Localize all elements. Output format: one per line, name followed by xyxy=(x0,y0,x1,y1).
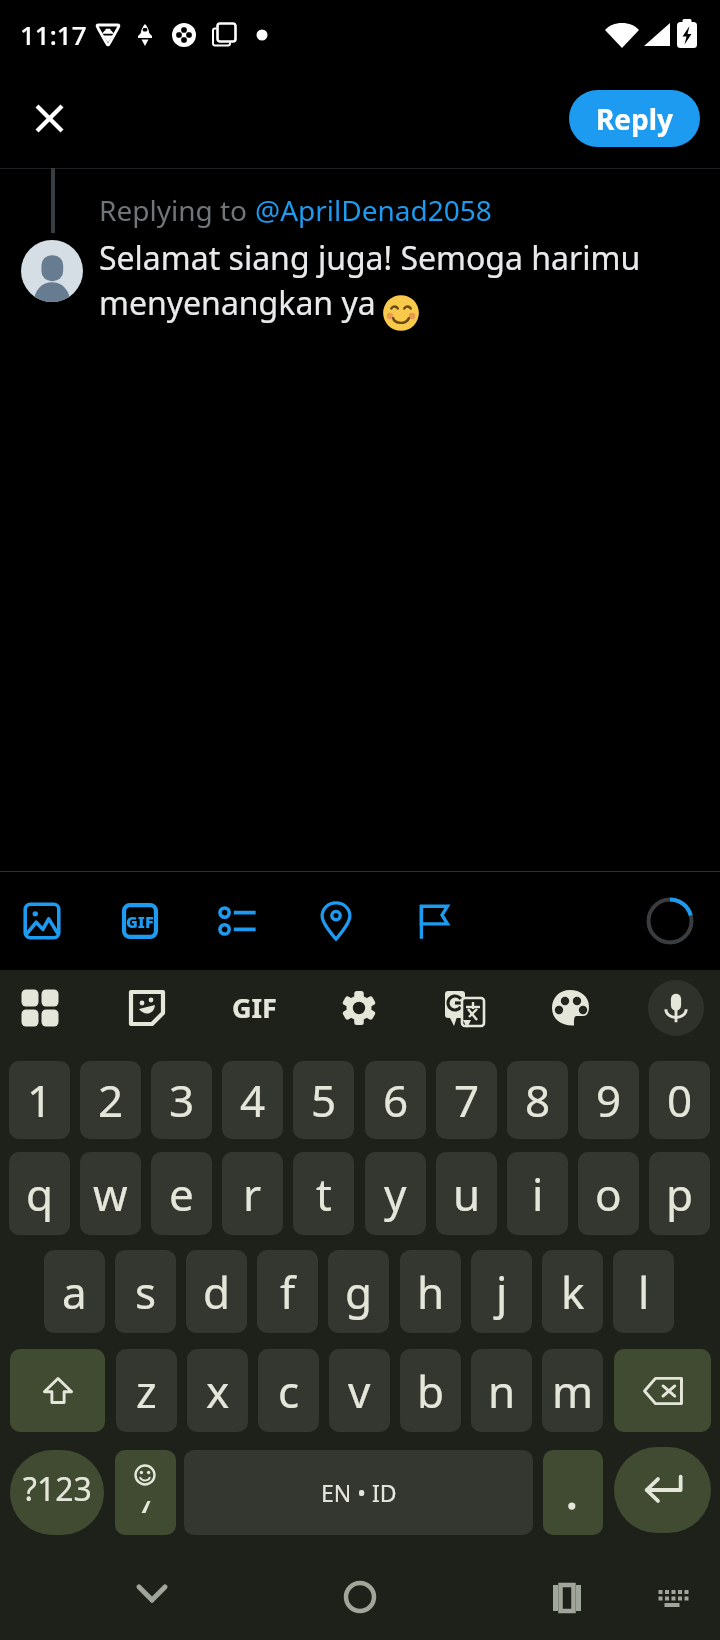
staticText: 2 xyxy=(98,1070,124,1130)
button[interactable]: d xyxy=(186,1250,247,1333)
staticText: v xyxy=(348,1361,371,1421)
staticText: u xyxy=(453,1164,481,1224)
button[interactable]: k xyxy=(542,1250,603,1333)
staticText: EN • ID xyxy=(321,1477,397,1508)
staticText: n xyxy=(488,1361,516,1421)
button[interactable]: 7 xyxy=(436,1061,497,1139)
button[interactable]: Hide keyboard xyxy=(112,1555,192,1635)
staticText: f xyxy=(280,1262,296,1322)
staticText: Selamat siang juga! Semoga harimu menyen… xyxy=(99,236,641,325)
button[interactable]: c xyxy=(258,1349,319,1432)
staticText: o xyxy=(595,1164,622,1224)
staticText: 1 xyxy=(27,1070,53,1130)
staticText: y xyxy=(384,1164,407,1224)
button[interactable]: s xyxy=(115,1250,176,1333)
button[interactable]: 1 xyxy=(9,1061,70,1139)
button[interactable]: g xyxy=(328,1250,389,1333)
staticText: 3 xyxy=(169,1070,195,1130)
staticText: p xyxy=(666,1164,694,1224)
button[interactable]: Recent apps xyxy=(527,1555,607,1635)
button[interactable]: 0 xyxy=(649,1061,710,1139)
staticText: l xyxy=(638,1262,650,1322)
button[interactable]: Backspace xyxy=(614,1349,711,1432)
button[interactable]: 3 xyxy=(151,1061,212,1139)
button[interactable]: w xyxy=(80,1152,141,1235)
staticText: Reply xyxy=(596,100,674,138)
button[interactable]: o xyxy=(578,1152,639,1235)
staticText: t xyxy=(316,1164,332,1224)
staticText: 8 xyxy=(525,1070,551,1130)
button[interactable]: q xyxy=(9,1152,70,1235)
button[interactable]: z xyxy=(116,1349,177,1432)
staticText: GIF xyxy=(232,989,277,1026)
button[interactable]: Emoji xyxy=(115,1450,176,1535)
button[interactable]: Poll xyxy=(209,892,267,950)
staticText: c xyxy=(278,1361,300,1421)
button[interactable]: Location xyxy=(307,892,365,950)
button[interactable]: m xyxy=(542,1349,603,1432)
button[interactable]: Switch keyboard xyxy=(632,1555,712,1635)
button[interactable]: Highlight xyxy=(405,892,463,950)
button[interactable]: Media xyxy=(13,892,71,950)
staticText: w xyxy=(93,1164,128,1224)
staticText: q xyxy=(26,1164,54,1224)
button[interactable]: 9 xyxy=(578,1061,639,1139)
button[interactable]: b xyxy=(400,1349,461,1432)
staticText: 7 xyxy=(454,1070,480,1130)
staticText: 11:17 xyxy=(20,17,87,52)
button[interactable]: Shift xyxy=(10,1349,105,1432)
staticText: m xyxy=(552,1361,594,1421)
button[interactable]: EN • ID xyxy=(184,1450,533,1535)
staticText: 9 xyxy=(596,1070,622,1130)
button[interactable]: x xyxy=(187,1349,248,1432)
button[interactable]: y xyxy=(365,1152,426,1235)
button[interactable]: j xyxy=(471,1250,532,1333)
staticText: g xyxy=(345,1262,373,1322)
staticText: Replying to xyxy=(99,191,255,229)
staticText: ?123 xyxy=(23,1467,92,1511)
staticText: k xyxy=(561,1262,585,1322)
button[interactable]: h xyxy=(400,1250,461,1333)
button[interactable]: i xyxy=(507,1152,568,1235)
button[interactable]: 8 xyxy=(507,1061,568,1139)
staticText: 6 xyxy=(383,1070,409,1130)
button[interactable]: Period xyxy=(543,1450,603,1535)
staticText: s xyxy=(135,1262,157,1322)
button[interactable]: Character count xyxy=(646,897,694,945)
button[interactable]: Close xyxy=(18,87,80,149)
staticText: a xyxy=(62,1262,87,1322)
button[interactable]: e xyxy=(151,1152,212,1235)
button[interactable]: 5 xyxy=(293,1061,354,1139)
button[interactable]: u xyxy=(436,1152,497,1235)
staticText: e xyxy=(169,1164,194,1224)
staticText: GIF xyxy=(126,911,154,933)
staticText: r xyxy=(243,1164,262,1224)
button[interactable]: r xyxy=(222,1152,283,1235)
staticText: z xyxy=(136,1361,157,1421)
button[interactable]: 4 xyxy=(222,1061,283,1139)
staticText: 0 xyxy=(667,1070,693,1130)
button[interactable]: Enter xyxy=(614,1447,711,1533)
staticText: j xyxy=(496,1262,508,1322)
staticText: d xyxy=(203,1262,231,1322)
staticText: 4 xyxy=(240,1070,266,1130)
button[interactable]: Home xyxy=(320,1555,400,1635)
staticText: x xyxy=(206,1361,230,1421)
staticText: h xyxy=(417,1262,445,1322)
staticText: i xyxy=(532,1164,544,1224)
button[interactable]: ?123 xyxy=(10,1450,104,1535)
button[interactable]: GIF xyxy=(111,892,169,950)
button[interactable]: 2 xyxy=(80,1061,141,1139)
staticText: b xyxy=(417,1361,445,1421)
button[interactable]: v xyxy=(329,1349,390,1432)
button[interactable]: 6 xyxy=(365,1061,426,1139)
button[interactable]: @AprilDenad2058 xyxy=(255,191,492,229)
button[interactable]: f xyxy=(257,1250,318,1333)
button[interactable]: p xyxy=(649,1152,710,1235)
button[interactable]: a xyxy=(44,1250,105,1333)
button[interactable]: Voice input xyxy=(648,980,704,1036)
button[interactable]: n xyxy=(471,1349,532,1432)
button[interactable]: l xyxy=(613,1250,674,1333)
button[interactable]: t xyxy=(293,1152,354,1235)
button[interactable]: Reply xyxy=(569,90,700,147)
